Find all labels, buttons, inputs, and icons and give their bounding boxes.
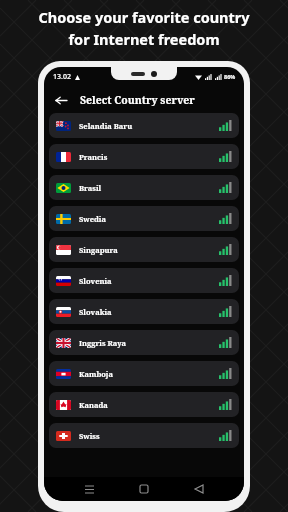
button[interactable]: Home — [134, 479, 154, 499]
button[interactable]: Brasil — [49, 175, 239, 200]
button[interactable]: Slovenia — [49, 268, 239, 293]
button[interactable]: Prancis — [49, 144, 239, 169]
staticText: for Internet freedom — [68, 29, 220, 49]
button[interactable]: Inggris Raya — [49, 330, 239, 355]
staticText: Inggris Raya — [79, 338, 127, 348]
staticText: 86% — [224, 73, 236, 80]
staticText: Slovenia — [79, 276, 112, 286]
button[interactable]: Swedia — [49, 206, 239, 231]
staticText: Slovakia — [79, 307, 112, 317]
button[interactable]: Kamboja — [49, 361, 239, 386]
staticText: Kanada — [79, 400, 108, 410]
staticText: Choose your favorite country — [38, 7, 250, 27]
button[interactable]: Back — [189, 479, 209, 499]
staticText: Swiss — [79, 431, 100, 441]
button[interactable]: Selandia Baru — [49, 113, 239, 138]
button[interactable]: Kanada — [49, 392, 239, 417]
button[interactable]: Back — [52, 91, 70, 109]
staticText: Select Country server — [80, 93, 195, 107]
button[interactable]: Singapura — [49, 237, 239, 262]
staticText: Prancis — [79, 152, 108, 162]
staticText: 13.02 — [53, 72, 71, 82]
button[interactable]: Swiss — [49, 423, 239, 448]
staticText: Singapura — [79, 245, 118, 255]
button[interactable]: Slovakia — [49, 299, 239, 324]
staticText: Kamboja — [79, 369, 113, 379]
staticText: Selandia Baru — [79, 121, 133, 131]
staticText: Brasil — [79, 183, 102, 193]
staticText: Swedia — [79, 214, 106, 224]
button[interactable]: Recents — [79, 479, 99, 499]
